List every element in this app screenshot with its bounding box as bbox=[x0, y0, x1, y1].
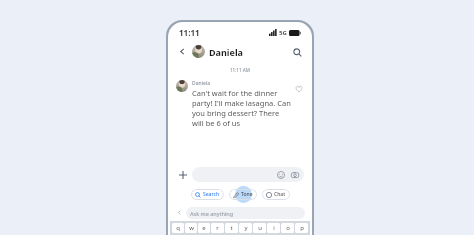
button[interactable]: Previous bbox=[175, 208, 184, 217]
button[interactable]: Tone bbox=[229, 189, 257, 200]
button[interactable]: Add attachment bbox=[176, 168, 189, 181]
button[interactable]: e bbox=[198, 223, 210, 233]
staticText: i bbox=[273, 224, 275, 232]
staticText: Search bbox=[203, 191, 220, 198]
button[interactable]: Ask me anything bbox=[186, 207, 305, 219]
staticText: Ask me anything bbox=[190, 210, 234, 217]
staticText: q bbox=[176, 224, 180, 232]
button[interactable]: Emoji bbox=[276, 170, 286, 180]
staticText: Tone bbox=[241, 191, 253, 198]
staticText: Daniela bbox=[209, 46, 243, 58]
button[interactable]: r bbox=[211, 223, 224, 233]
button[interactable]: Emoji bbox=[192, 167, 304, 182]
staticText: 11:11 AM bbox=[230, 67, 250, 73]
button[interactable]: q bbox=[172, 223, 184, 233]
button[interactable]: t bbox=[225, 223, 238, 233]
staticText: t bbox=[230, 224, 233, 232]
button[interactable]: Camera bbox=[290, 170, 300, 180]
button[interactable]: i bbox=[267, 223, 280, 233]
button[interactable]: Like bbox=[294, 84, 304, 94]
staticText: Chat bbox=[274, 191, 286, 198]
button[interactable]: Search bbox=[191, 189, 224, 200]
button[interactable]: p bbox=[295, 223, 308, 233]
button[interactable]: Chat bbox=[262, 189, 290, 200]
button[interactable]: Daniela bbox=[176, 80, 304, 128]
button[interactable]: Back bbox=[176, 45, 189, 58]
staticText: p bbox=[300, 224, 304, 232]
button[interactable]: w bbox=[185, 223, 197, 233]
staticText: Can't wait for the dinner party! I'll ma… bbox=[192, 88, 291, 128]
button[interactable]: Search bbox=[290, 45, 304, 59]
staticText: y bbox=[244, 224, 248, 232]
staticText: 11:11 bbox=[179, 27, 200, 38]
button[interactable]: u bbox=[253, 223, 266, 233]
staticText: o bbox=[286, 224, 290, 232]
staticText: u bbox=[258, 224, 262, 232]
staticText: w bbox=[189, 224, 194, 232]
staticText: e bbox=[202, 224, 206, 232]
button[interactable]: y bbox=[239, 223, 252, 233]
staticText: 5G bbox=[279, 29, 287, 37]
staticText: Daniela bbox=[192, 80, 211, 87]
button[interactable]: o bbox=[281, 223, 294, 233]
staticText: r bbox=[216, 224, 219, 232]
